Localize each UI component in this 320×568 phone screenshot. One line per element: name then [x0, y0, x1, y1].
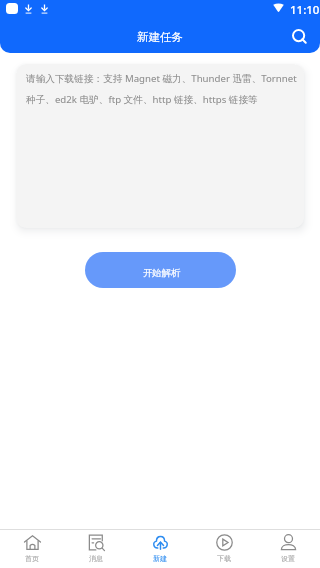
staticText: 请输入下载链接：支持 Magnet 磁力、Thunder 迅雷、Tornnet … [26, 72, 297, 106]
staticText: 11:10 [290, 2, 320, 18]
button[interactable]: 设置 [256, 529, 320, 568]
staticText: 设置 [281, 554, 295, 563]
staticText: 开始解析 [143, 267, 181, 279]
staticText: 消息 [89, 554, 103, 563]
staticText: 下载 [217, 554, 231, 563]
button[interactable]: 首页 [0, 529, 64, 568]
button[interactable]: 消息 [64, 529, 128, 568]
button[interactable]: 新建 [128, 529, 192, 568]
button[interactable]: 请输入下载链接：支持 Magnet 磁力、Thunder 迅雷、Tornnet … [16, 64, 304, 228]
staticText: 新建 [153, 554, 167, 563]
button[interactable]: Search [282, 19, 315, 53]
button[interactable]: 下载 [192, 529, 256, 568]
staticText: 新建任务 [137, 30, 183, 44]
staticText: 首页 [25, 554, 39, 563]
button[interactable]: 开始解析 [85, 252, 236, 288]
